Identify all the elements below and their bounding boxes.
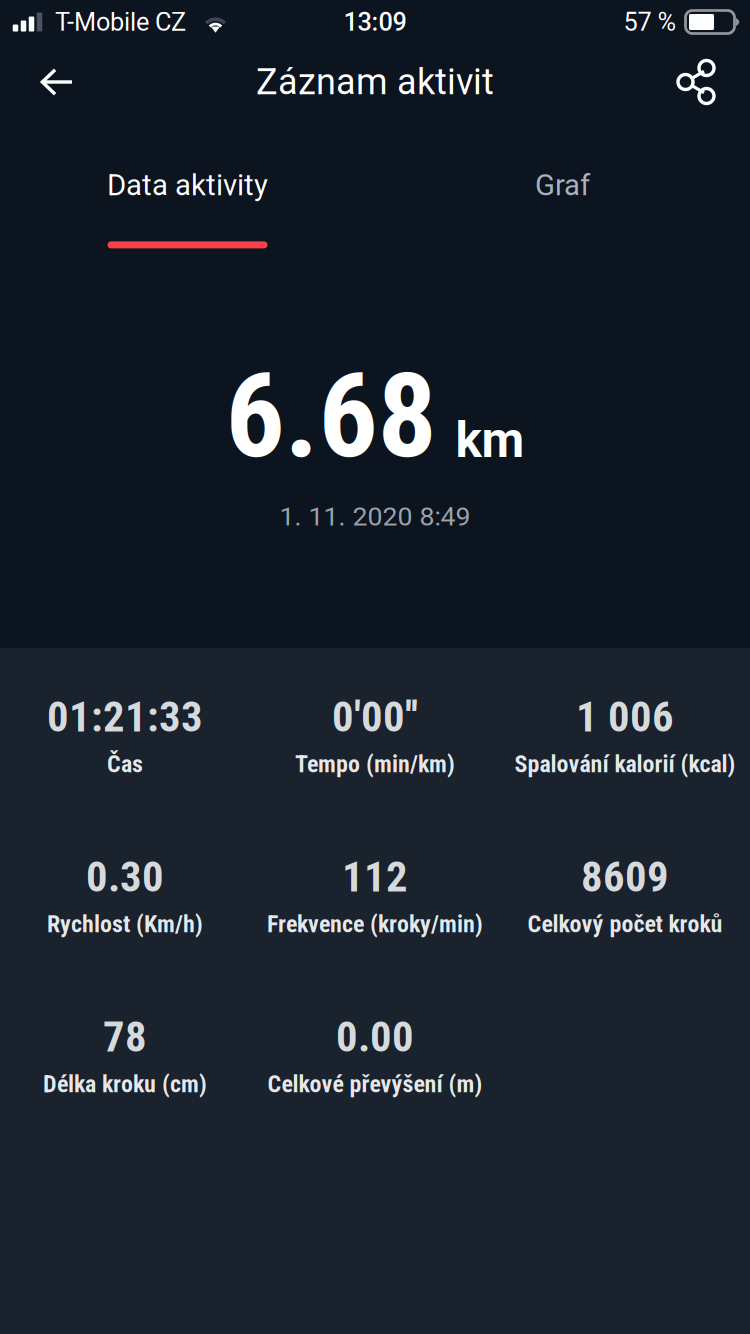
staticText: 1. 11. 2020 8:49 [279,501,470,532]
staticText: Záznam aktivit [256,61,494,103]
staticText: 0'00'' [332,692,418,742]
staticText: 0.00 [336,1012,414,1062]
staticText: 13:09 [343,7,406,37]
staticText: Graf [535,168,590,202]
staticText: 112 [342,852,408,902]
button[interactable]: Data aktivity [0,120,375,260]
staticText: km [455,411,524,469]
staticText: 01:21:33 [47,692,203,742]
staticText: 1 006 [576,692,674,742]
staticText: Celkové převýšení (m) [267,1070,482,1098]
staticText: 0.30 [86,852,164,902]
staticText: Celkový počet kroků [527,910,722,938]
staticText: Spalování kalorií (kcal) [514,750,735,778]
staticText: Délka kroku (cm) [43,1070,207,1098]
button[interactable]: Share [665,49,731,115]
staticText: 8609 [581,852,669,902]
button[interactable]: Graf [375,120,750,260]
staticText: Frekvence (kroky/min) [267,910,483,938]
staticText: Tempo (min/km) [295,750,455,778]
staticText: Rychlost (Km/h) [47,910,203,938]
staticText: 78 [103,1012,147,1062]
staticText: 6.68 [225,347,436,485]
staticText: T-Mobile CZ [55,7,186,37]
staticText: Čas [107,750,143,778]
staticText: 57 % [623,7,676,37]
staticText: Data aktivity [107,168,268,202]
button[interactable]: Back [24,49,90,115]
